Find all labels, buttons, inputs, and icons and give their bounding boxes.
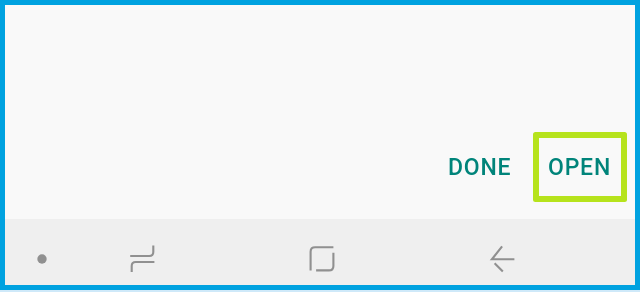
staticText: DONE bbox=[448, 154, 512, 181]
button[interactable]: OPEN bbox=[533, 132, 627, 202]
staticText: OPEN bbox=[548, 154, 612, 181]
button[interactable]: Home bbox=[298, 235, 346, 283]
button[interactable]: Recent apps bbox=[118, 235, 166, 283]
button[interactable]: DONE bbox=[428, 138, 531, 196]
button[interactable]: Back bbox=[477, 235, 525, 283]
button[interactable]: Menu bbox=[18, 235, 66, 283]
